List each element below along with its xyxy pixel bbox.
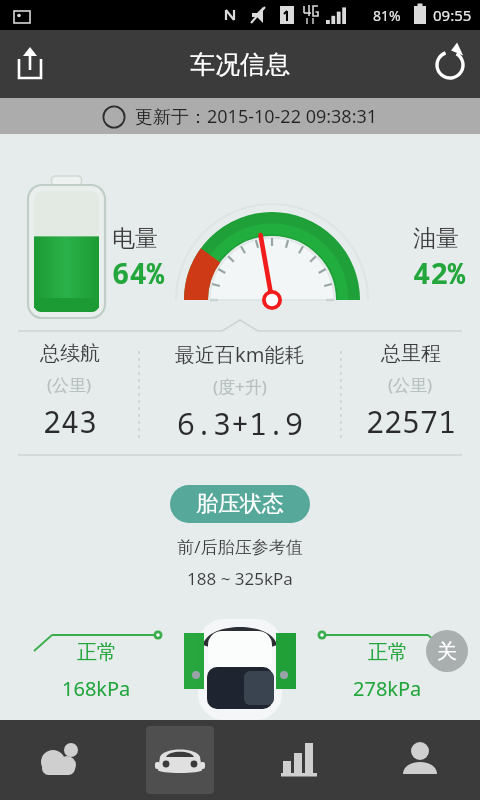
button[interactable]: 分享 — [0, 34, 60, 94]
staticText: 油量 — [413, 224, 459, 253]
staticText: (公里) — [388, 373, 433, 396]
staticText: (度+升) — [213, 375, 267, 398]
staticText: 09:55 — [433, 5, 472, 25]
staticText: 22571 — [366, 401, 456, 442]
staticText: 前/后胎压参考值 — [177, 535, 303, 558]
button[interactable]: 车况 — [120, 720, 240, 800]
button[interactable]: 总续航 — [0, 333, 139, 451]
button[interactable]: 我的 — [360, 720, 480, 800]
staticText: 64% — [112, 253, 165, 292]
staticText: 42% — [413, 253, 466, 292]
staticText: 更新于：2015-10-22 09:38:31 — [135, 104, 378, 129]
staticText: 电量 — [112, 224, 158, 253]
button[interactable]: 刷新 — [420, 34, 480, 94]
staticText: 总里程 — [381, 341, 441, 366]
staticText: 关 — [437, 639, 457, 664]
button[interactable]: 胎压状态 — [170, 485, 310, 523]
staticText: 81% — [373, 6, 401, 25]
button[interactable]: 统计 — [240, 720, 360, 800]
staticText: 最近百km能耗 — [175, 341, 305, 368]
staticText: 243 — [43, 401, 97, 442]
staticText: 正常 — [77, 640, 117, 665]
staticText: 胎压状态 — [196, 490, 284, 518]
staticText: 车况信息 — [190, 49, 290, 80]
button[interactable]: 天气 — [0, 720, 120, 800]
button[interactable]: 最近百km能耗 — [139, 333, 341, 451]
staticText: 168kPa — [62, 675, 131, 702]
staticText: (公里) — [47, 373, 92, 396]
staticText: 278kPa — [353, 675, 422, 702]
staticText: 正常 — [368, 640, 408, 665]
button[interactable]: 总里程 — [341, 333, 480, 451]
staticText: 188 ~ 325kPa — [187, 567, 293, 590]
staticText: 总续航 — [40, 341, 100, 366]
staticText: 6.3+1.9 — [177, 403, 303, 444]
button[interactable]: 关闭 — [426, 630, 468, 672]
